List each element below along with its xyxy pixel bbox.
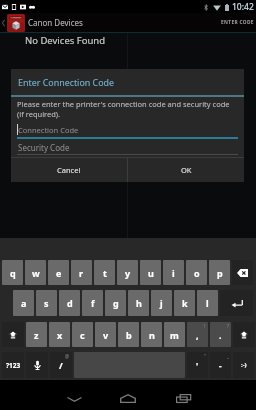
staticText: c — [80, 329, 85, 341]
staticText: n — [149, 329, 155, 341]
staticText: / — [59, 359, 63, 371]
button[interactable]: / — [50, 352, 72, 378]
button[interactable]: j — [151, 290, 172, 316]
button[interactable]: Cancel — [11, 158, 127, 182]
staticText: v — [103, 329, 109, 341]
button[interactable]: d — [59, 290, 80, 316]
staticText: r — [79, 267, 84, 279]
staticText: Enter Connection Code — [18, 76, 115, 88]
staticText: , — [196, 329, 199, 341]
button[interactable]: m — [164, 322, 185, 347]
staticText: @ — [65, 353, 70, 359]
button[interactable]: , — [187, 322, 208, 347]
button[interactable]: ?123 — [2, 352, 24, 378]
button[interactable]: u — [140, 260, 161, 285]
staticText: l — [206, 297, 209, 309]
button[interactable]: q — [2, 260, 23, 285]
staticText: ? — [227, 323, 229, 329]
staticText: . — [219, 329, 222, 341]
staticText: i — [172, 267, 175, 279]
staticText: e — [56, 267, 62, 279]
button[interactable]: v — [95, 322, 116, 347]
staticText: ! — [204, 323, 206, 329]
staticText: d — [67, 297, 73, 309]
button[interactable]: Shift — [233, 322, 255, 347]
staticText: Cancel — [57, 165, 81, 175]
button[interactable]: :-) — [233, 352, 254, 378]
staticText: f — [91, 297, 95, 309]
button[interactable]: t — [94, 260, 115, 285]
button[interactable]: Backspace — [232, 260, 253, 285]
button[interactable]: k — [174, 290, 195, 316]
staticText: k — [182, 297, 188, 309]
staticText: - — [219, 360, 222, 371]
staticText: g — [113, 297, 119, 309]
staticText: Canon Devices — [28, 17, 83, 28]
button[interactable]: y — [117, 260, 138, 285]
staticText: o — [194, 267, 200, 279]
button[interactable]: o — [186, 260, 207, 285]
staticText: ?123 — [6, 361, 21, 370]
button[interactable]: . — [210, 322, 231, 347]
staticText: 10:42 — [232, 1, 254, 13]
staticText: No Devices Found — [25, 34, 106, 47]
staticText: m — [170, 329, 179, 341]
button[interactable]: w — [25, 260, 46, 285]
staticText: z — [34, 329, 39, 341]
button[interactable]: ' — [187, 352, 208, 378]
staticText: x — [57, 329, 63, 341]
staticText: y — [125, 267, 131, 279]
staticText: Please enter the printer's connection co… — [17, 99, 230, 109]
staticText: " — [204, 353, 206, 359]
staticText: h — [136, 297, 142, 309]
button[interactable]: f — [82, 290, 103, 316]
staticText: _ — [227, 353, 229, 359]
button[interactable]: s — [36, 290, 57, 316]
button[interactable]: z — [26, 322, 47, 347]
staticText: w — [32, 267, 40, 279]
staticText: b — [126, 329, 132, 341]
button[interactable]: r — [71, 260, 92, 285]
button[interactable]: c — [72, 322, 93, 347]
button[interactable]: Recent apps — [168, 386, 198, 410]
staticText: :-) — [241, 361, 247, 369]
button[interactable]: Microphone — [26, 352, 48, 378]
button[interactable]: Home — [113, 386, 143, 410]
button[interactable]: e — [48, 260, 69, 285]
staticText: (if required). — [17, 109, 61, 119]
staticText: p — [217, 267, 223, 279]
button[interactable]: b — [118, 322, 139, 347]
button[interactable]: a — [13, 290, 34, 316]
staticText: Connection Code — [18, 125, 79, 135]
button[interactable]: Hide keyboard — [59, 387, 89, 410]
button[interactable]: h — [128, 290, 149, 316]
button[interactable]: g — [105, 290, 126, 316]
staticText: ENTER CODE — [221, 19, 254, 26]
button[interactable]: p — [209, 260, 230, 285]
staticText: ' — [196, 360, 199, 371]
button[interactable]: i — [163, 260, 184, 285]
button[interactable]: ENTER CODE — [215, 14, 256, 31]
staticText: OK — [181, 165, 192, 175]
button[interactable]: OK — [128, 158, 244, 182]
staticText: s — [44, 297, 49, 309]
staticText: a — [21, 297, 27, 309]
staticText: u — [148, 267, 154, 279]
button[interactable]: Navigate up — [0, 13, 7, 32]
button[interactable]: x — [49, 322, 70, 347]
button[interactable]: n — [141, 322, 162, 347]
button[interactable]: Shift — [2, 322, 24, 347]
staticText: j — [160, 297, 163, 309]
button[interactable]: Enter — [220, 290, 253, 316]
button[interactable]: - — [210, 352, 231, 378]
staticText: q — [10, 267, 16, 279]
staticText: t — [103, 267, 107, 279]
staticText: Security Code — [18, 142, 70, 153]
button[interactable]: l — [197, 290, 218, 316]
